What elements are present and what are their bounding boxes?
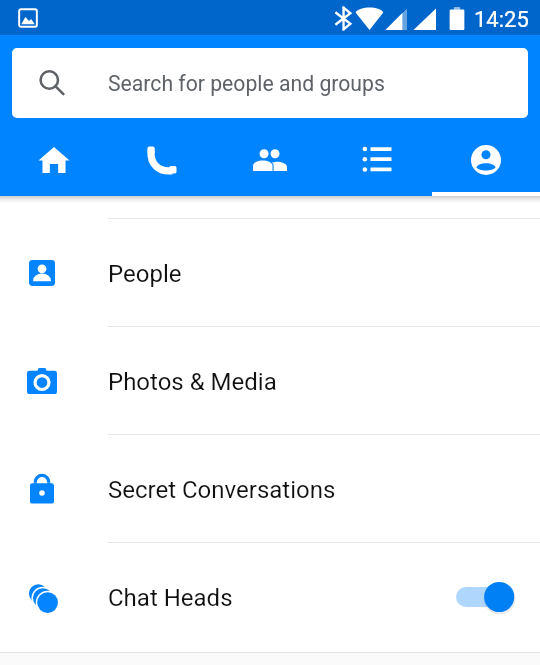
button[interactable]: Profile — [432, 128, 540, 196]
staticText: 14:25 — [474, 7, 529, 33]
button[interactable]: Photos & Media — [0, 327, 540, 434]
button[interactable]: Secret Conversations — [0, 435, 540, 542]
button[interactable]: People — [0, 219, 540, 326]
staticText: Photos & Media — [108, 368, 277, 396]
staticText: People — [108, 260, 182, 288]
button[interactable]: Chat Heads toggle — [444, 543, 528, 650]
button[interactable]: Home — [0, 128, 108, 196]
staticText: Secret Conversations — [108, 476, 336, 504]
button[interactable]: Groups — [216, 128, 324, 196]
staticText: Chat Heads — [108, 584, 233, 612]
button[interactable]: Search — [12, 48, 528, 118]
staticText: Search for people and groups — [108, 71, 385, 96]
button[interactable]: Chat Heads — [0, 543, 540, 650]
button[interactable]: Calls — [108, 128, 216, 196]
button[interactable]: Discover — [324, 128, 432, 196]
